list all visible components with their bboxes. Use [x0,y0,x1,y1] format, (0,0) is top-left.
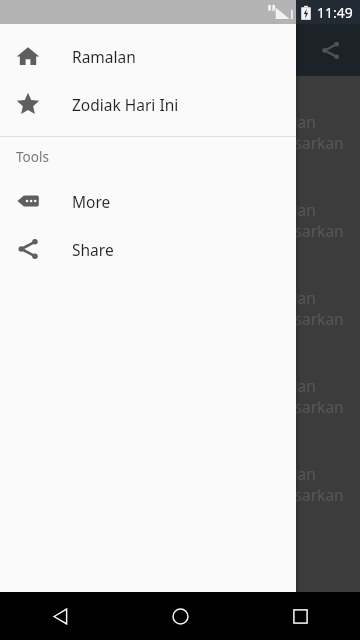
button[interactable]: Ramalan berdasarkan [0,268,360,356]
button[interactable]: Ramalan berdasarkan [0,180,360,268]
staticText: More [72,191,111,212]
staticText: Ramalan berdasarkan [252,199,360,241]
button[interactable]: Home [148,592,212,640]
staticText: Ramalan berdasarkan [252,375,360,417]
button[interactable]: Share [0,225,296,273]
button[interactable]: More [0,177,296,225]
button[interactable]: Ramalan berdasarkan [0,356,360,444]
staticText: Zodiak Hari Ini [72,94,179,115]
button[interactable]: Ramalan berdasarkan [0,444,360,532]
button[interactable]: Share [308,28,352,72]
staticText: Ramalan berdasarkan [252,463,360,505]
button[interactable]: Back [28,592,92,640]
staticText: 11:49 [317,3,353,22]
staticText: Ramalan [72,46,136,67]
button[interactable]: Ramalan [0,32,296,80]
button[interactable]: Recent apps [268,592,332,640]
button[interactable]: Zodiak Hari Ini [0,80,296,128]
button[interactable]: Ramalan berdasarkan [0,92,360,180]
staticText: Ramalan berdasarkan [252,111,360,153]
staticText: Share [72,239,114,260]
staticText: Tools [16,148,49,166]
staticText: Ramalan berdasarkan [252,287,360,329]
